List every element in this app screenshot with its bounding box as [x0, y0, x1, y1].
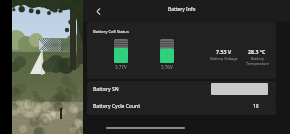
staticText: 3.76V: [161, 64, 173, 70]
staticText: Battery Cycle Count: [93, 103, 141, 110]
staticText: 18: [253, 103, 259, 110]
staticText: Battery Cell Status: [93, 29, 129, 35]
button[interactable]: Back: [89, 2, 107, 20]
staticText: Battery Info: [168, 6, 196, 13]
button[interactable]: Battery Cycle Count: [87, 98, 276, 115]
staticText: Battery SN: [93, 86, 119, 93]
staticText: 7.53 V: [216, 48, 232, 55]
button[interactable]: Battery SN: [87, 81, 276, 98]
staticText: 3.77V: [115, 64, 127, 70]
staticText: 28.3 °C: [248, 48, 266, 55]
staticText: Battery Temperature: [246, 56, 269, 66]
staticText: Battery Voltage: [210, 56, 238, 61]
